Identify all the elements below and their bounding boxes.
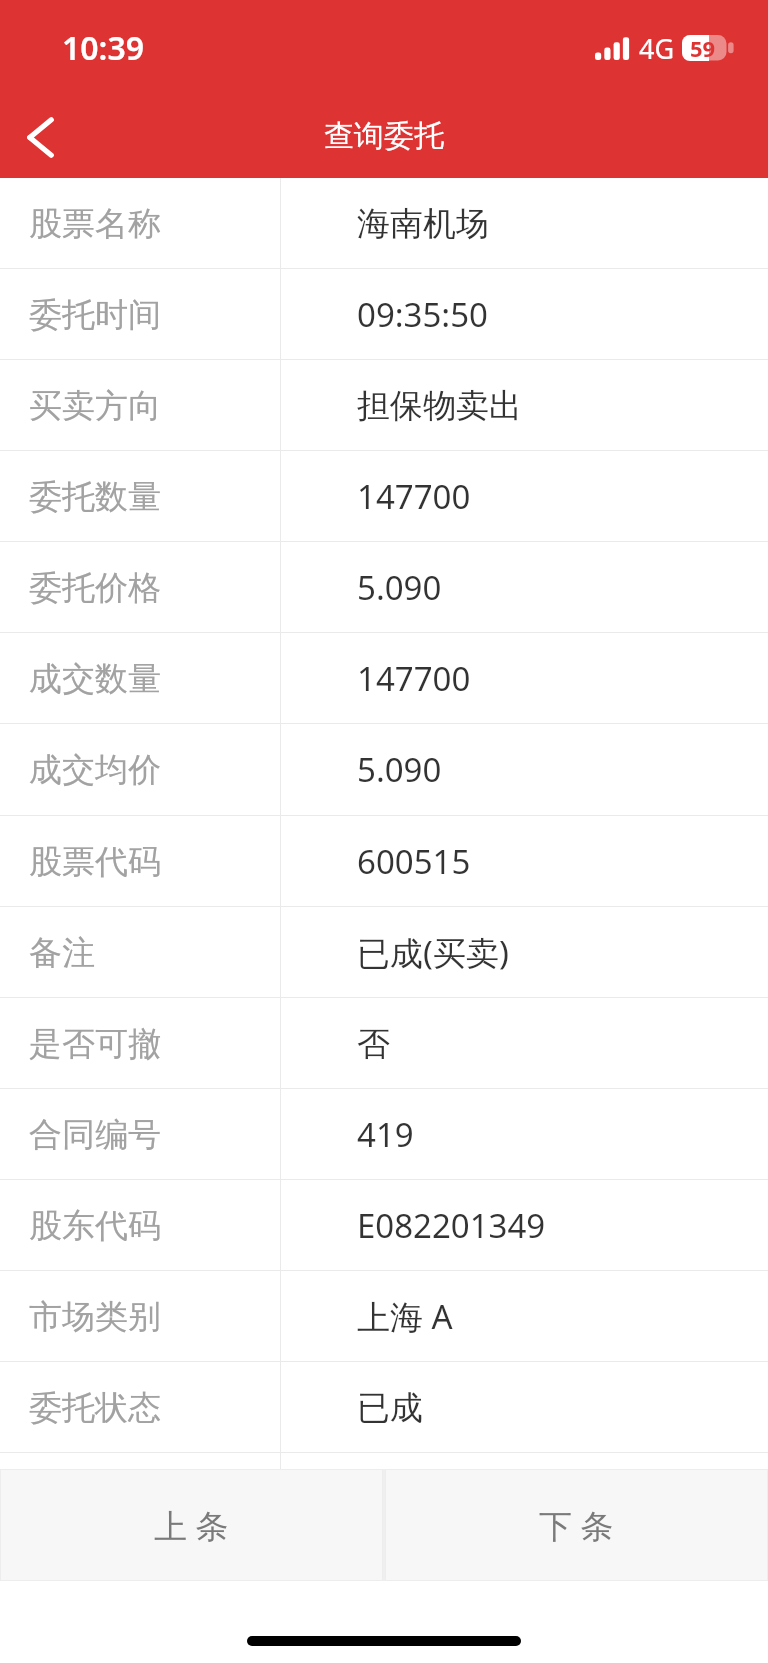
staticText: 已成	[357, 1387, 423, 1429]
staticText: 委托状态	[29, 1387, 161, 1429]
staticText: 10:39	[62, 26, 145, 70]
button[interactable]: 股票代码	[0, 816, 768, 907]
staticText: 成交数量	[29, 658, 161, 700]
button[interactable]: 成交数量	[0, 633, 768, 724]
staticText: 4G	[639, 30, 675, 67]
staticText: 查询委托	[324, 117, 444, 155]
staticText: 147700	[357, 656, 471, 701]
button[interactable]: 股东代码	[0, 1180, 768, 1271]
staticText: 147700	[357, 474, 471, 519]
button[interactable]: 市场类别	[0, 1271, 768, 1362]
button[interactable]: 委托价格	[0, 542, 768, 633]
staticText: 股东代码	[29, 1205, 161, 1247]
button[interactable]: 买卖方向	[0, 360, 768, 451]
staticText: 已成(买卖)	[357, 930, 509, 975]
staticText: 委托数量	[29, 476, 161, 518]
staticText: 5.090	[357, 565, 442, 610]
staticText: 09:35:50	[357, 292, 488, 337]
staticText: 上海 A	[357, 1294, 453, 1339]
staticText: 担保物卖出	[357, 385, 522, 427]
button[interactable]: 委托时间	[0, 269, 768, 360]
button[interactable]: 成交均价	[0, 724, 768, 815]
staticText: 下 条	[539, 1503, 614, 1548]
button[interactable]: 上 条	[1, 1470, 382, 1580]
staticText: 否	[357, 1023, 390, 1065]
button[interactable]: Back	[0, 88, 80, 178]
button[interactable]: 委托数量	[0, 451, 768, 542]
staticText: 上 条	[154, 1503, 229, 1548]
staticText: 备注	[29, 932, 95, 974]
staticText: 股票名称	[29, 203, 161, 245]
button[interactable]: 股票名称	[0, 178, 768, 269]
staticText: 419	[357, 1112, 414, 1157]
staticText: 600515	[357, 839, 471, 884]
staticText: 合同编号	[29, 1114, 161, 1156]
staticText: 市场类别	[29, 1296, 161, 1338]
button[interactable]: 委托状态	[0, 1362, 768, 1453]
button[interactable]: 备注	[0, 907, 768, 998]
staticText: 是否可撤	[29, 1023, 161, 1065]
staticText: 5.090	[357, 747, 442, 792]
staticText: 委托时间	[29, 294, 161, 336]
staticText: E082201349	[357, 1203, 546, 1248]
staticText: 成交均价	[29, 749, 161, 791]
button[interactable]: 是否可撤	[0, 998, 768, 1089]
staticText: 海南机场	[357, 203, 489, 245]
staticText: 买卖方向	[29, 385, 161, 427]
staticText: 59	[690, 33, 716, 59]
staticText: 股票代码	[29, 841, 161, 883]
button[interactable]: 合同编号	[0, 1089, 768, 1180]
button[interactable]: 下 条	[386, 1470, 767, 1580]
staticText: 委托价格	[29, 567, 161, 609]
